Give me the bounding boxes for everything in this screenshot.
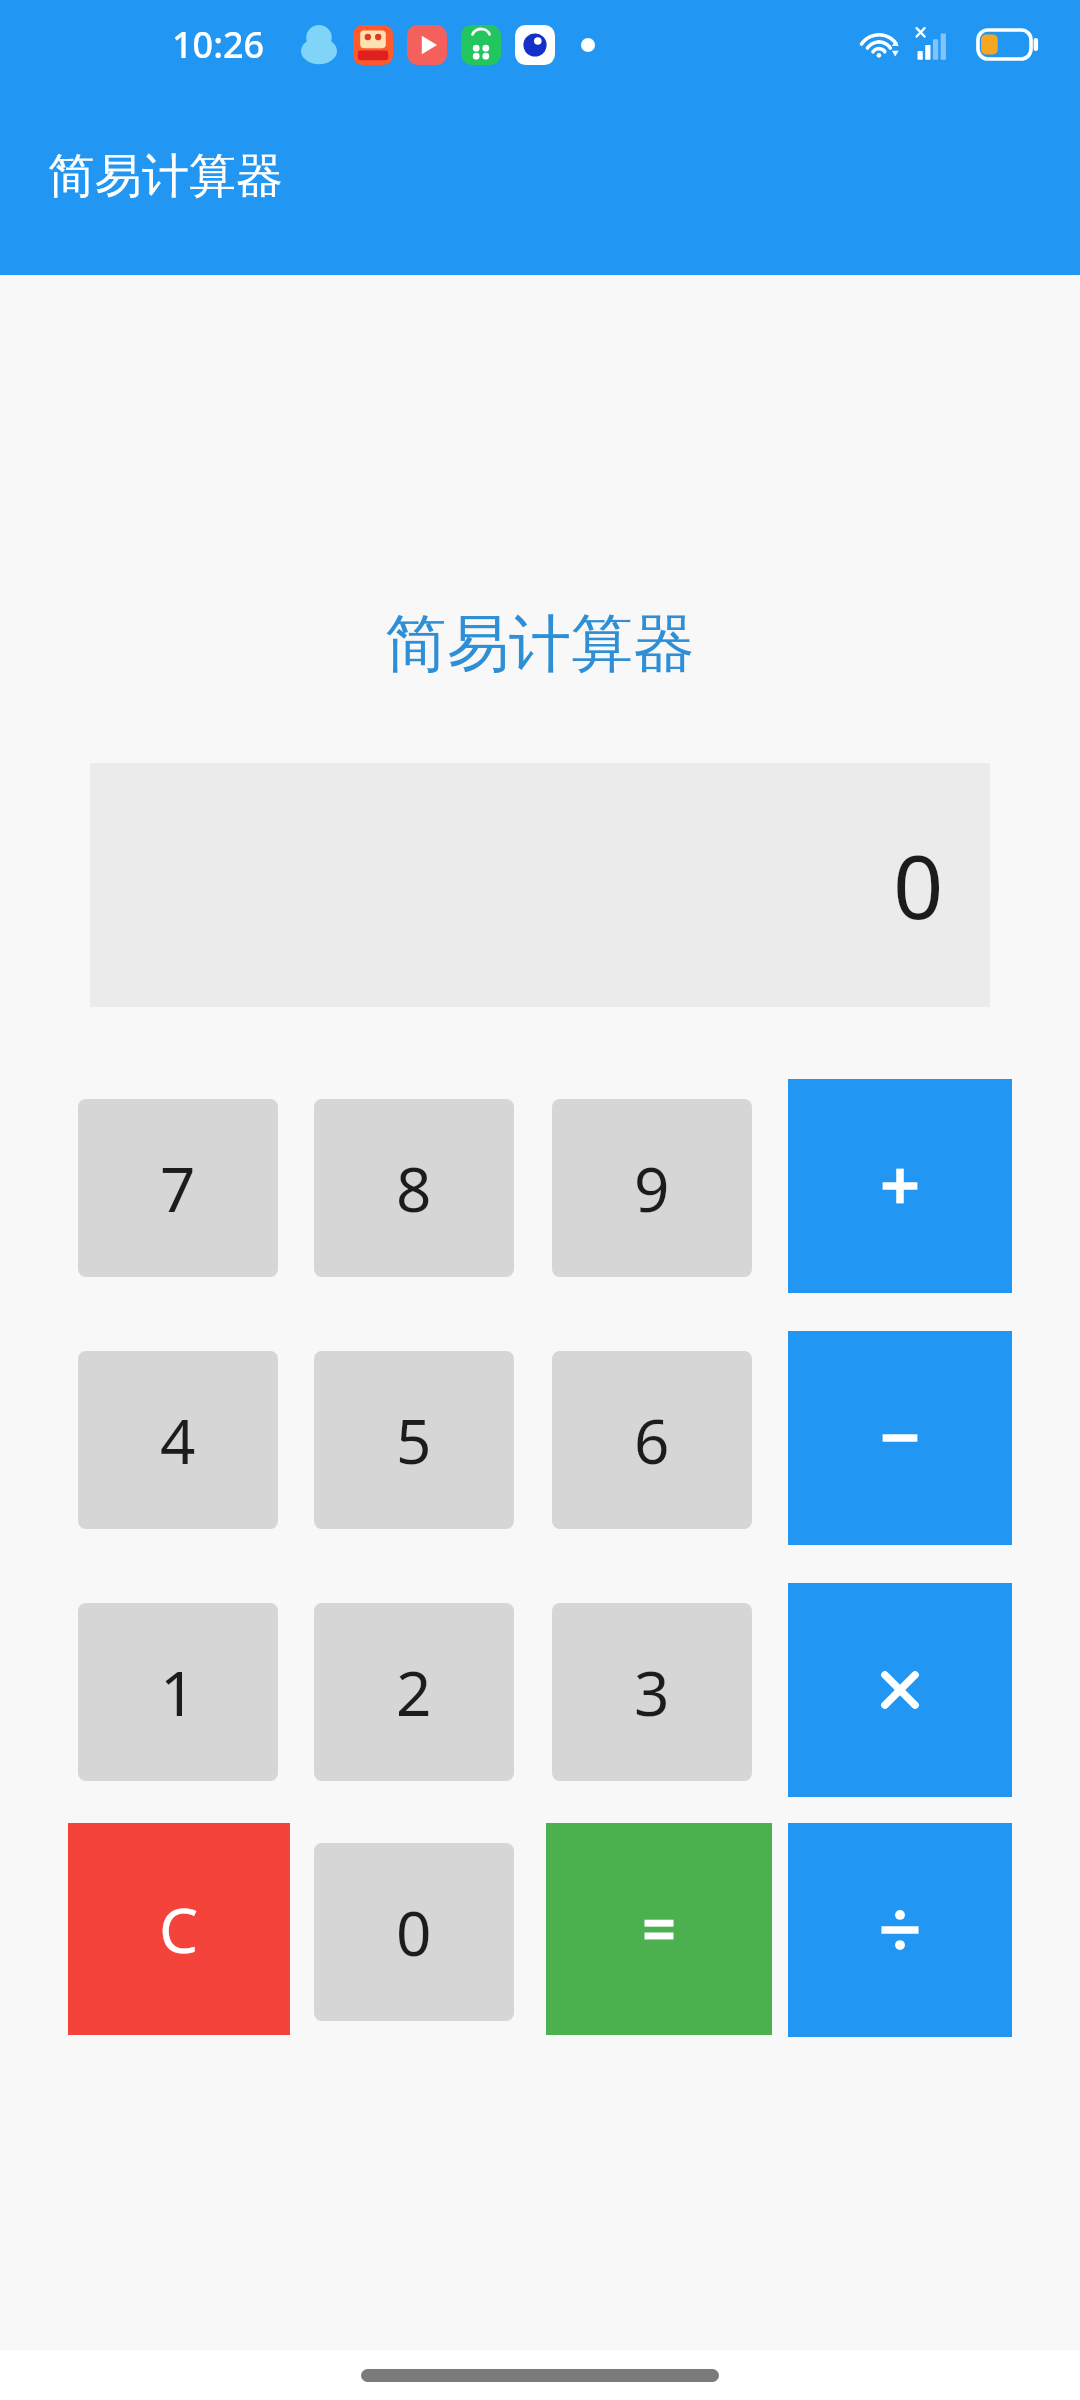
button[interactable]: Minus [788,1331,1012,1545]
staticText: 3 [634,1650,670,1734]
button[interactable]: 2 [314,1603,514,1781]
button[interactable]: 8 [314,1099,514,1277]
staticText: 9 [634,1146,670,1230]
staticText: C [159,1887,199,1971]
staticText: 5 [396,1398,432,1482]
button[interactable]: 9 [552,1099,752,1277]
staticText: 7 [160,1146,196,1230]
button[interactable]: 0 [314,1843,514,2021]
staticText: 4 [160,1398,196,1482]
staticText: 0 [396,1890,432,1974]
staticText: 2 [396,1650,432,1734]
button[interactable]: 3 [552,1603,752,1781]
staticText: 6 [634,1398,670,1482]
button[interactable]: 4 [78,1351,278,1529]
button[interactable]: Divide [788,1823,1012,2037]
staticText: 1 [160,1650,196,1734]
staticText: 8 [396,1146,432,1230]
staticText: 10:26 [172,20,265,69]
button[interactable]: 1 [78,1603,278,1781]
button[interactable]: Plus [788,1079,1012,1293]
button[interactable]: 6 [552,1351,752,1529]
staticText: 简易计算器 [48,147,283,206]
button[interactable]: C [68,1823,290,2035]
staticText: 简易计算器 [0,605,1080,683]
staticText: 0 [893,825,944,945]
button[interactable]: 5 [314,1351,514,1529]
button[interactable]: Equals [546,1823,772,2035]
button[interactable]: Multiply [788,1583,1012,1797]
button[interactable]: 7 [78,1099,278,1277]
